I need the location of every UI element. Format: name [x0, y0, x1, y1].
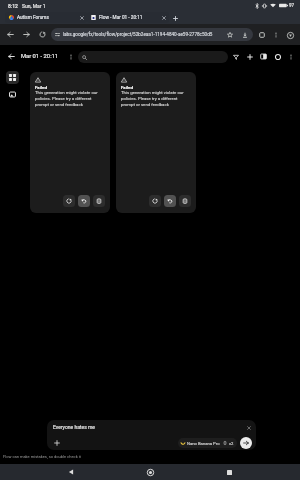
button[interactable]: Forward — [19, 27, 34, 42]
button[interactable]: Add media — [51, 437, 62, 448]
button[interactable]: Profile — [283, 28, 297, 42]
button[interactable]: Filter — [230, 51, 241, 62]
staticText: Sun, Mar 1 — [22, 3, 46, 9]
button[interactable]: Tabs — [255, 28, 269, 42]
button[interactable]: labs.google/fx/tools/flow/project/52b2ea… — [51, 28, 253, 41]
button[interactable]: Flow - Mar 01 - 20:11 — [87, 12, 169, 23]
button[interactable]: Back — [5, 50, 18, 63]
button[interactable]: Nano Banana Pro — [178, 438, 237, 448]
button[interactable]: Close tab — [78, 14, 85, 21]
staticText: Nano Banana Pro — [187, 441, 220, 446]
button[interactable]: More — [285, 51, 296, 62]
staticText: labs.google/fx/tools/flow/project/52b2ea… — [63, 32, 224, 37]
button[interactable]: Assets — [6, 88, 19, 101]
staticText: 97 — [289, 3, 295, 8]
staticText: x2 — [229, 441, 234, 446]
button[interactable]: Clear — [245, 424, 252, 431]
button[interactable]: Close tab — [160, 14, 167, 21]
button[interactable]: More options — [270, 29, 282, 41]
button[interactable]: Add — [244, 51, 255, 62]
button[interactable]: Retry — [63, 195, 75, 207]
staticText: Failed — [35, 85, 47, 90]
button[interactable]: Board — [6, 71, 19, 84]
staticText: Autism Forums — [17, 15, 77, 21]
button[interactable]: Reload — [35, 27, 50, 42]
button[interactable]: Delete — [179, 195, 191, 207]
button[interactable]: New tab — [169, 12, 181, 24]
staticText: Flow - Mar 01 - 20:11 — [99, 15, 159, 21]
button[interactable]: Failed — [30, 72, 110, 213]
button[interactable]: Back — [63, 464, 79, 480]
staticText: 8:12 — [8, 3, 18, 9]
staticText: Everyone hates me — [53, 424, 96, 430]
button[interactable]: Send — [240, 437, 252, 449]
staticText: Flow can make mistakes, so double check … — [3, 454, 81, 459]
staticText: Failed — [121, 85, 133, 90]
button[interactable]: Home — [142, 464, 158, 480]
button[interactable]: Failed — [116, 72, 196, 213]
button[interactable]: Undo — [78, 195, 90, 207]
button[interactable]: Layout — [258, 51, 269, 62]
button[interactable]: Retry — [149, 195, 161, 207]
button[interactable] — [78, 51, 228, 63]
button[interactable]: Back — [3, 27, 18, 42]
button[interactable]: Recents — [221, 464, 237, 480]
staticText: Mar 01 - 20:11 — [21, 53, 59, 60]
button[interactable]: Delete — [93, 195, 105, 207]
button[interactable]: Undo — [164, 195, 176, 207]
button[interactable]: Settings — [272, 51, 283, 62]
staticText: This generation might violate our polici… — [35, 90, 105, 107]
button[interactable]: Project menu — [65, 51, 76, 62]
button[interactable]: Autism Forums — [5, 12, 87, 23]
staticText: This generation might violate our polici… — [121, 90, 191, 107]
